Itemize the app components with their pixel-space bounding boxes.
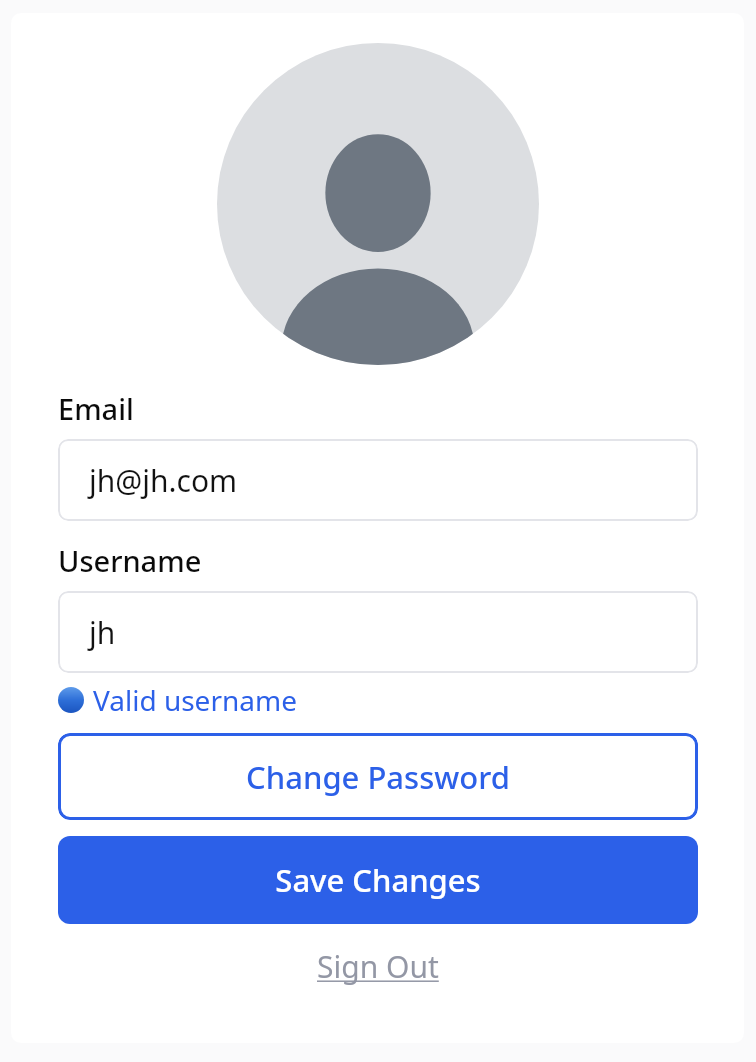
staticText: Sign Out [317,946,439,987]
button[interactable]: jh [58,591,698,673]
button[interactable]: Sign Out [309,942,447,991]
staticText: Username [58,541,202,580]
button[interactable]: jh@jh.com [58,439,698,521]
staticText: jh [89,612,116,653]
staticText: Valid username [93,681,297,719]
staticText: jh@jh.com [89,460,238,501]
button[interactable]: Profile photo [217,43,539,365]
staticText: Change Password [246,756,510,798]
staticText: Save Changes [275,859,481,901]
button[interactable]: Save Changes [58,836,698,924]
staticText: Email [58,389,134,428]
button[interactable]: Change Password [58,733,698,820]
